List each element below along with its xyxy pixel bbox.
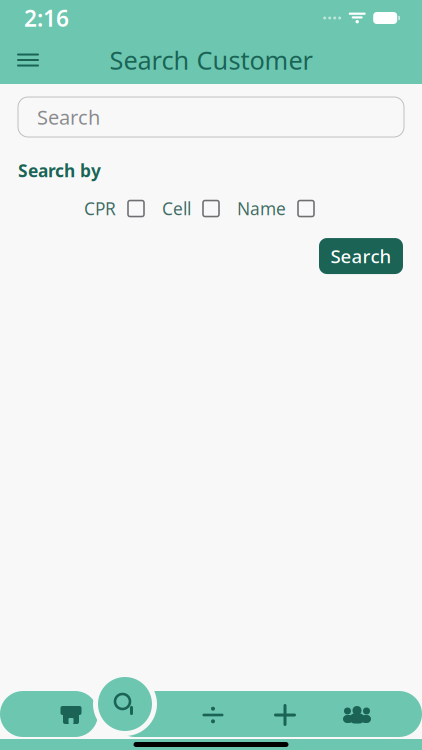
button[interactable]: Calculate [177, 692, 249, 738]
staticText: Search by [18, 159, 101, 182]
button[interactable]: Search [319, 238, 403, 274]
button[interactable]: Customers [321, 692, 393, 738]
staticText: 2:16 [24, 3, 69, 33]
button[interactable]: Menu [6, 38, 50, 82]
button[interactable]: Home [29, 692, 113, 738]
staticText: Name [237, 197, 286, 220]
staticText: CPR [84, 197, 116, 220]
staticText: Search [330, 244, 391, 268]
button[interactable]: Name [237, 197, 314, 220]
staticText: Cell [162, 197, 191, 220]
button[interactable]: Search [93, 672, 157, 736]
button[interactable]: Cell [162, 197, 219, 220]
button[interactable]: Add [249, 692, 321, 738]
staticText: Search [37, 104, 100, 130]
button[interactable]: CPR [84, 197, 144, 220]
staticText: Search Customer [109, 43, 312, 77]
